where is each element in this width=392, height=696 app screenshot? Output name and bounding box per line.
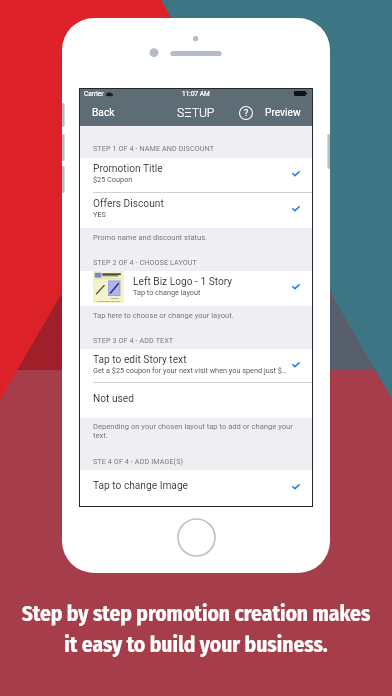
staticText: STEP 1 OF 4 - NAME AND DISCOUNT <box>93 144 215 152</box>
staticText: S <box>177 106 184 120</box>
staticText: Promo name and discount status. <box>93 233 208 242</box>
button[interactable]: Tap to change Image <box>80 470 312 506</box>
staticText: STEP 2 OF 4 - CHOOSE LAYOUT <box>93 258 198 266</box>
staticText: ? <box>244 108 249 119</box>
button[interactable]: Offers Discount <box>80 193 312 228</box>
staticText: STE 4 OF 4 - ADD IMAGE(S) <box>93 457 184 465</box>
staticText: Tap to change layout <box>133 288 201 297</box>
button[interactable]: Back <box>80 103 123 123</box>
button[interactable]: Tap to edit Story text <box>80 349 312 383</box>
staticText: Tap to edit Story text <box>93 354 187 366</box>
staticText: Depending on your chosen layout tap to a… <box>93 422 297 440</box>
staticText: $25 Coupon <box>93 175 133 184</box>
staticText: STEP 3 OF 4 - ADD TEXT <box>93 336 174 344</box>
button[interactable]: Left Biz Logo - 1 Story <box>80 271 312 306</box>
staticText: Left Biz Logo - 1 Story <box>133 276 233 288</box>
staticText: Carrier <box>84 90 104 98</box>
staticText: Step by step promotion creation makes it… <box>0 601 392 658</box>
staticText: Get a $25 coupon for your next visit whe… <box>93 366 287 375</box>
staticText: TUP <box>192 106 215 120</box>
staticText: Tap to change Image <box>93 480 189 492</box>
staticText: Promotion Title <box>93 163 163 175</box>
staticText: YES <box>93 210 106 219</box>
staticText: Not used <box>93 393 134 405</box>
staticText: 11:07 AM <box>182 90 210 98</box>
button[interactable]: Help <box>239 106 253 120</box>
staticText: Offers Discount <box>93 198 164 210</box>
staticText: Tap here to choose or change your layout… <box>93 311 234 320</box>
button[interactable]: Preview <box>265 107 301 119</box>
button[interactable]: Promotion Title <box>80 158 312 193</box>
button[interactable]: Not used <box>80 383 312 418</box>
